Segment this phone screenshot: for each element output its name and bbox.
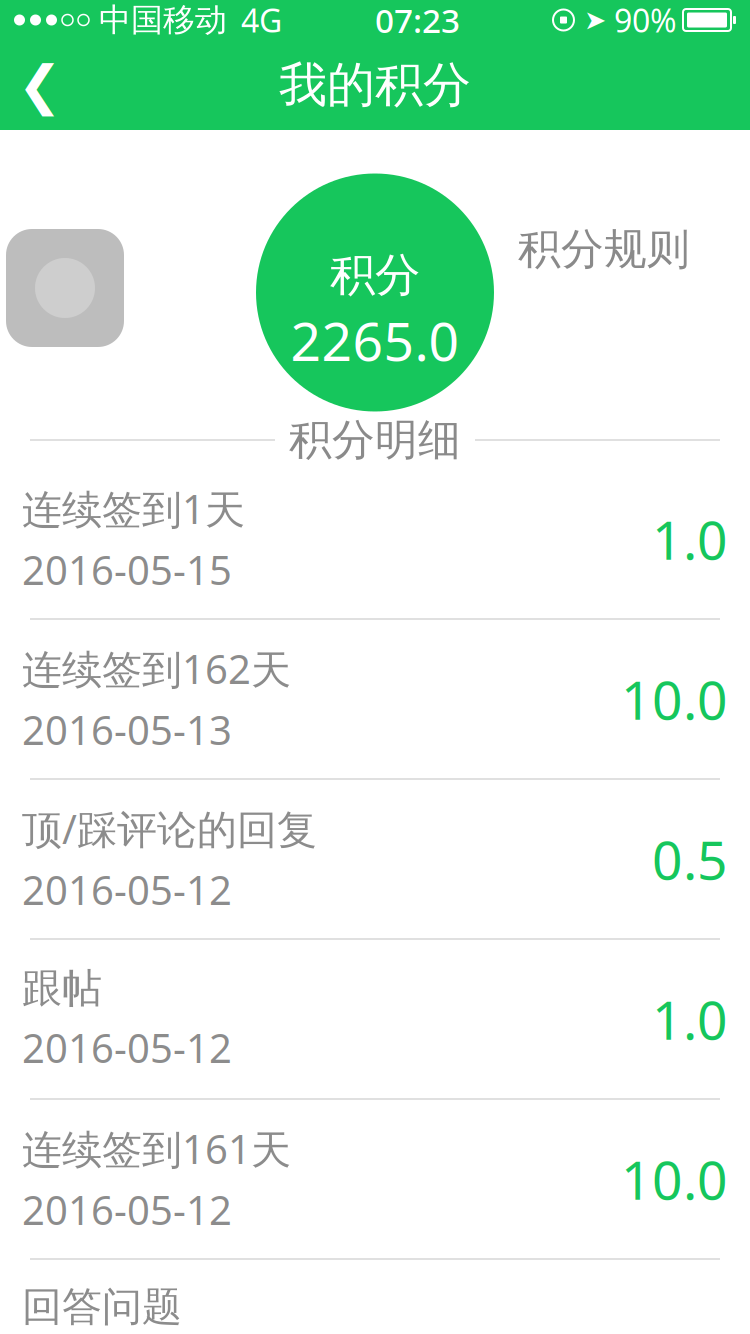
staticText: 连续签到162天 xyxy=(22,642,291,695)
button[interactable]: 连续签到162天 xyxy=(0,620,750,780)
staticText: 10.0 xyxy=(621,1144,728,1214)
staticText: 积分 xyxy=(330,247,420,303)
staticText: 0.5 xyxy=(652,824,728,894)
staticText: 4G xyxy=(241,0,282,41)
staticText: 顶/踩评论的回复 xyxy=(22,802,317,855)
staticText: 积分规则 xyxy=(518,223,690,275)
staticText: 2016-05-12 xyxy=(22,1021,232,1074)
staticText: 2016-05-13 xyxy=(22,703,232,756)
staticText: ❮ xyxy=(17,55,62,115)
button[interactable]: 连续签到1天 xyxy=(0,460,750,620)
staticText: 2016-05-12 xyxy=(22,1183,232,1236)
button[interactable]: 积分规则 xyxy=(518,203,750,275)
staticText: 90% xyxy=(614,0,677,41)
button[interactable]: 跟帖 xyxy=(0,940,750,1100)
staticText: 回答问题 xyxy=(22,1282,182,1331)
staticText: 2016-05-12 xyxy=(22,863,232,916)
staticText: 2016-05-15 xyxy=(22,543,232,596)
button[interactable]: 返回 xyxy=(0,41,80,129)
staticText: 我的积分 xyxy=(279,55,471,114)
staticText: 中国移动 xyxy=(99,0,227,40)
staticText: ➤ xyxy=(584,5,606,35)
staticText: 连续签到161天 xyxy=(22,1122,291,1175)
button[interactable]: 连续签到161天 xyxy=(0,1100,750,1260)
button[interactable]: 顶/踩评论的回复 xyxy=(0,780,750,940)
staticText: 连续签到1天 xyxy=(22,482,245,535)
staticText: 跟帖 xyxy=(22,964,102,1013)
staticText: 1.0 xyxy=(652,504,728,574)
staticText: 2265.0 xyxy=(290,305,459,376)
staticText: 07:23 xyxy=(375,0,460,42)
staticText: 10.0 xyxy=(621,664,728,734)
staticText: 1.0 xyxy=(652,984,728,1054)
staticText: 积分明细 xyxy=(289,414,461,466)
